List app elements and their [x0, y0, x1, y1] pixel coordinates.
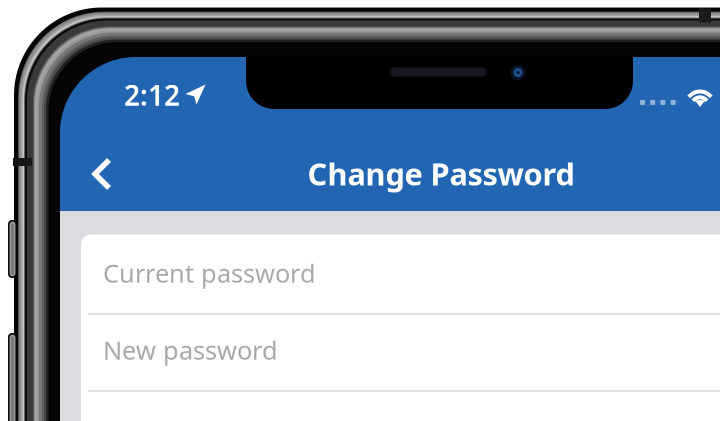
staticText: Current password: [103, 256, 316, 290]
staticText: Change Password: [307, 153, 574, 194]
button[interactable]: Back: [76, 148, 128, 200]
staticText: 2:12: [124, 76, 180, 114]
staticText: New password: [103, 333, 278, 367]
